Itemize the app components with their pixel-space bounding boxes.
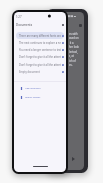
staticText: You need a longer sentence to test wor bbox=[19, 48, 61, 52]
staticText: it a bbox=[69, 41, 74, 45]
staticText: lertool, bbox=[69, 50, 78, 54]
staticText: her look bbox=[69, 45, 80, 49]
button[interactable]: More options bbox=[60, 22, 66, 28]
staticText: es. bbox=[69, 63, 73, 67]
button[interactable]: Empty document bbox=[16, 68, 64, 75]
staticText: Documents bbox=[16, 23, 33, 27]
button[interactable]: Import images bbox=[20, 93, 66, 101]
staticText: Empty document bbox=[19, 70, 61, 74]
button[interactable]: You need a longer sentence to test wor bbox=[16, 46, 64, 53]
staticText: ▴ ▮▮ ● ▬ bbox=[66, 14, 77, 17]
staticText: 1:27 bbox=[16, 15, 22, 19]
button[interactable]: Don't forget to give it all the attent bbox=[16, 61, 64, 68]
staticText: Don't forget to give it all the attent bbox=[19, 55, 61, 59]
button[interactable]: New document bbox=[20, 84, 66, 92]
staticText: es with bbox=[69, 32, 78, 36]
staticText: New document bbox=[25, 87, 41, 90]
staticText: Don't forget to give it all the attent bbox=[19, 63, 61, 67]
staticText: ich of bbox=[69, 59, 76, 63]
staticText: ased on bbox=[69, 36, 79, 40]
button[interactable]: The next continues to explore a new wa bbox=[16, 39, 64, 46]
button[interactable]: Don't forget to give it all the attent bbox=[16, 53, 64, 60]
staticText: s, at bbox=[69, 54, 75, 58]
staticText: Import images bbox=[25, 96, 41, 99]
button[interactable]: There are many different fonts and sty bbox=[16, 32, 64, 39]
staticText: The next continues to explore a new wa bbox=[19, 41, 61, 45]
staticText: There are many different fonts and sty bbox=[19, 34, 61, 38]
